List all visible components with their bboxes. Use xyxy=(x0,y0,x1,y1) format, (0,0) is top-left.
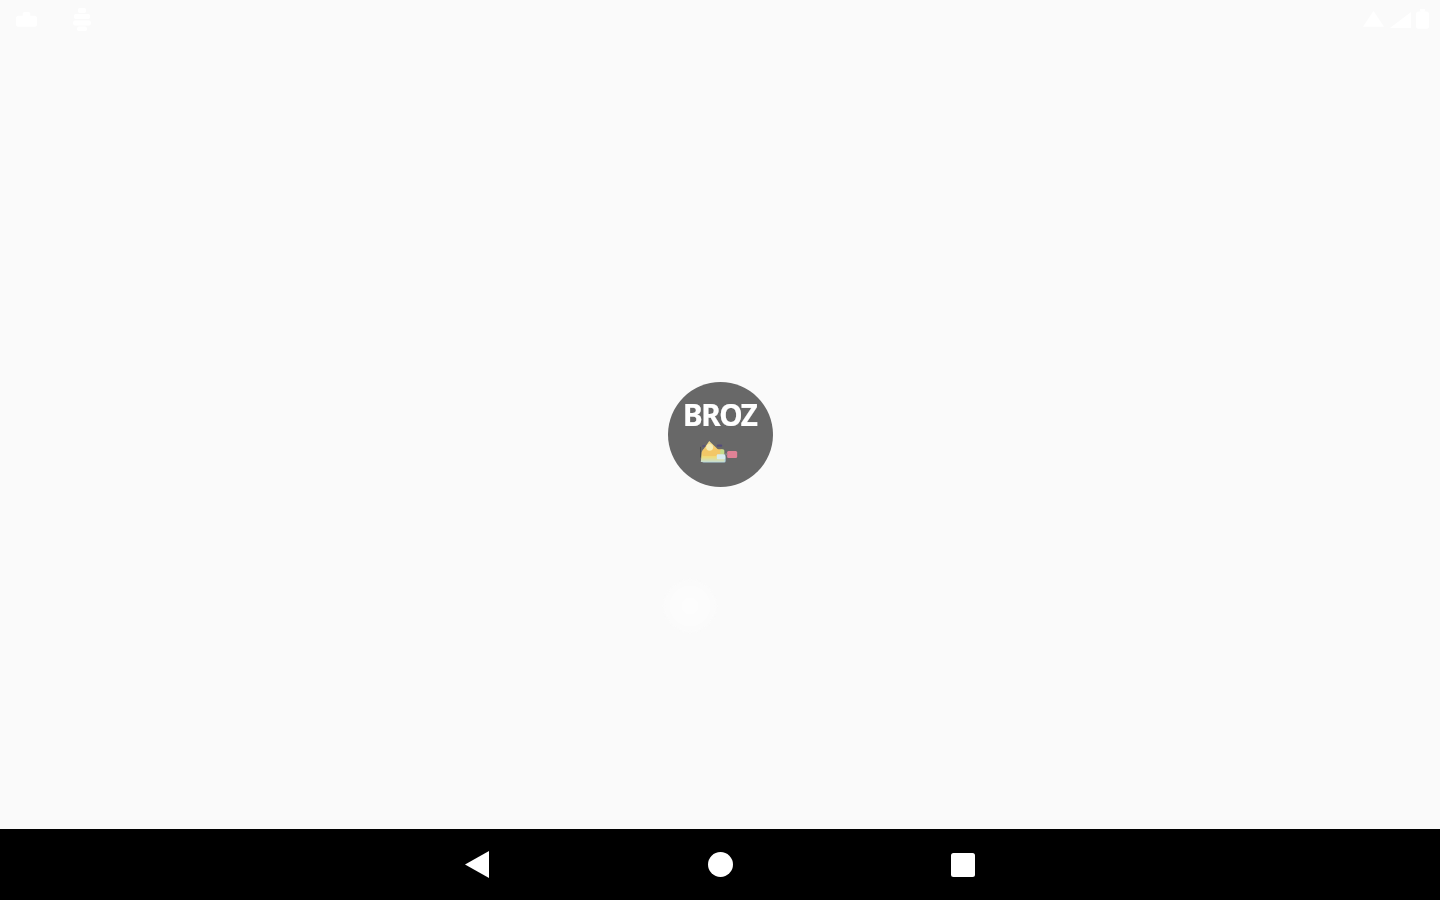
button[interactable]: Home xyxy=(684,829,756,900)
button[interactable]: BROZ xyxy=(668,382,773,487)
staticText: BROZ xyxy=(683,394,757,434)
button[interactable]: Recent apps xyxy=(927,829,999,900)
button[interactable]: Back xyxy=(441,829,513,900)
